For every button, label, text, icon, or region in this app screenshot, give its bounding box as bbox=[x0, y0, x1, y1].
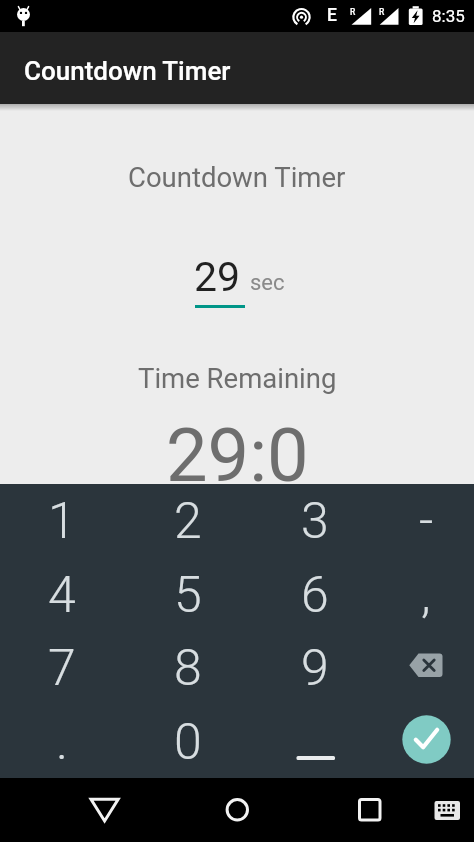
staticText: 7 bbox=[48, 639, 76, 698]
button[interactable]: 6 bbox=[260, 558, 370, 632]
staticText: 29:0 bbox=[166, 412, 309, 499]
button[interactable] bbox=[371, 631, 474, 705]
staticText: 5 bbox=[174, 566, 202, 625]
button[interactable]: , bbox=[371, 558, 474, 632]
button[interactable]: 5 bbox=[133, 558, 243, 632]
staticText: E bbox=[327, 5, 337, 26]
staticText: Countdown Timer bbox=[24, 56, 231, 86]
staticText: 8 bbox=[174, 639, 202, 698]
button[interactable] bbox=[213, 786, 261, 834]
button[interactable]: . bbox=[7, 705, 117, 779]
button[interactable]: 29 bbox=[193, 246, 245, 312]
button[interactable] bbox=[260, 705, 370, 779]
button[interactable]: 8 bbox=[133, 631, 243, 705]
button[interactable]: 3 bbox=[260, 484, 370, 558]
staticText: 29 bbox=[194, 253, 241, 301]
staticText: R bbox=[379, 7, 385, 17]
staticText: Time Remaining bbox=[138, 362, 337, 394]
staticText: 4 bbox=[48, 566, 76, 625]
button[interactable] bbox=[428, 788, 468, 828]
button[interactable]: 1 bbox=[7, 484, 117, 558]
staticText: Countdown Timer bbox=[128, 161, 346, 193]
button[interactable]: 2 bbox=[133, 484, 243, 558]
staticText: , bbox=[421, 566, 431, 625]
button[interactable] bbox=[371, 705, 474, 779]
staticText: 9 bbox=[301, 639, 329, 698]
staticText: sec bbox=[250, 270, 285, 296]
button[interactable]: 7 bbox=[7, 631, 117, 705]
staticText: - bbox=[419, 492, 434, 551]
staticText: R bbox=[350, 7, 356, 17]
button[interactable] bbox=[80, 786, 128, 834]
button[interactable]: 9 bbox=[260, 631, 370, 705]
staticText: 3 bbox=[301, 492, 329, 551]
staticText: 6 bbox=[301, 566, 329, 625]
button[interactable] bbox=[346, 786, 394, 834]
button[interactable]: 0 bbox=[133, 705, 243, 779]
button[interactable]: 4 bbox=[7, 558, 117, 632]
staticText: 2 bbox=[174, 492, 202, 551]
button[interactable]: - bbox=[371, 484, 474, 558]
staticText: 1 bbox=[48, 492, 76, 551]
staticText: 0 bbox=[174, 713, 202, 772]
staticText: 8:35 bbox=[432, 6, 465, 26]
staticText: . bbox=[56, 713, 68, 772]
